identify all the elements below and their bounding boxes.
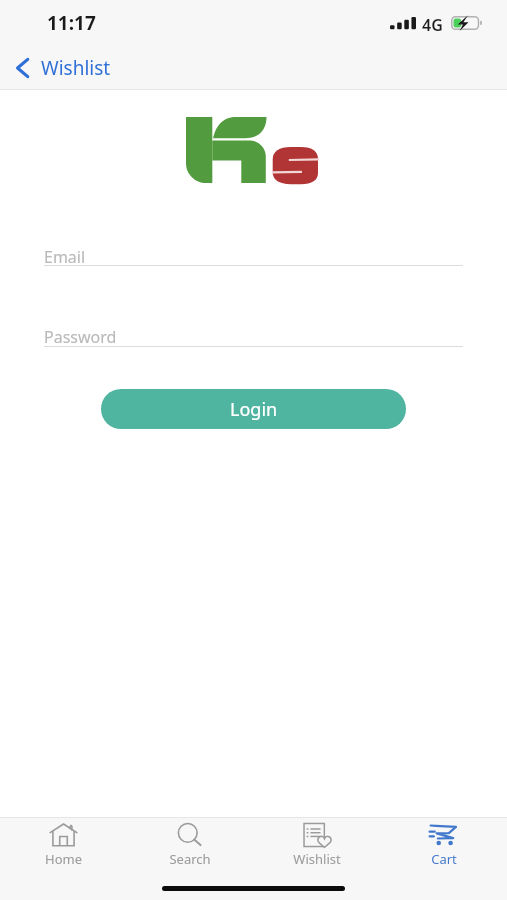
button[interactable]: Cart (380, 821, 507, 868)
staticText: Email (44, 246, 86, 265)
button[interactable]: Search (126, 821, 253, 868)
button[interactable]: Wishlist (253, 821, 380, 868)
button[interactable]: Wishlist (9, 52, 121, 84)
staticText: Login (230, 397, 278, 422)
staticText: Password (44, 326, 117, 346)
button[interactable]: Login (101, 389, 406, 429)
button[interactable]: Home (0, 821, 126, 868)
button[interactable]: Password (44, 326, 463, 346)
button[interactable]: Email (44, 246, 463, 265)
staticText: Cart (431, 850, 457, 868)
staticText: Home (45, 850, 82, 868)
staticText: Wishlist (293, 850, 341, 868)
staticText: Search (169, 850, 211, 868)
staticText: 11:17 (47, 10, 96, 36)
staticText: 4G (422, 14, 443, 36)
staticText: Wishlist (41, 55, 111, 81)
